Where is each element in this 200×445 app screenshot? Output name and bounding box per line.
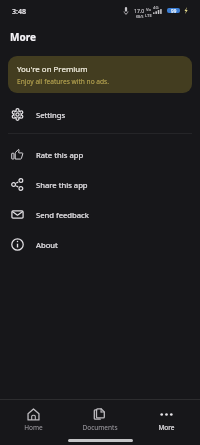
staticText: KB/S: [136, 14, 144, 19]
staticText: Rate this app: [36, 150, 84, 160]
staticText: Share this app: [36, 180, 88, 190]
staticText: 17.0: [134, 7, 145, 14]
button[interactable]: Share this app: [0, 170, 200, 199]
button[interactable]: Documents: [66, 408, 133, 432]
other: Home: [27, 408, 40, 421]
button[interactable]: Settings: [0, 100, 200, 129]
button[interactable]: About: [0, 230, 200, 259]
staticText: Home: [24, 423, 43, 432]
button[interactable]: Rate this app: [0, 140, 200, 169]
button[interactable]: Home: [0, 408, 66, 432]
staticText: Vo: [146, 7, 151, 13]
button[interactable]: More: [133, 408, 200, 432]
staticText: Send feedback: [36, 210, 89, 220]
staticText: More: [10, 30, 36, 44]
staticText: About: [36, 240, 58, 250]
staticText: 3:48: [12, 6, 27, 16]
staticText: More: [158, 423, 175, 432]
staticText: Documents: [82, 423, 118, 432]
other: Documents: [93, 408, 106, 421]
button[interactable]: You're on Premium: [8, 56, 192, 93]
staticText: 99: [171, 8, 177, 13]
staticText: Enjoy all features with no ads.: [17, 77, 110, 86]
other: More: [160, 408, 173, 421]
button[interactable]: Send feedback: [0, 200, 200, 229]
staticText: You're on Premium: [17, 64, 88, 75]
staticText: 4G: [153, 5, 159, 11]
staticText: LTE: [145, 13, 152, 19]
staticText: Settings: [36, 110, 66, 120]
